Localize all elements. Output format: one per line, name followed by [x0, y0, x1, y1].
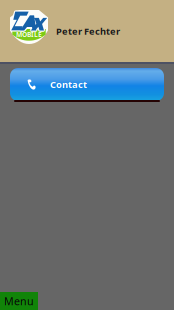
button[interactable]: Contact — [10, 68, 164, 101]
staticText: Menu — [4, 294, 34, 308]
staticText: MOBILE — [16, 30, 42, 39]
staticText: Contact — [50, 78, 87, 91]
button[interactable]: Menu — [0, 292, 38, 310]
staticText: Peter Fechter — [56, 25, 120, 37]
